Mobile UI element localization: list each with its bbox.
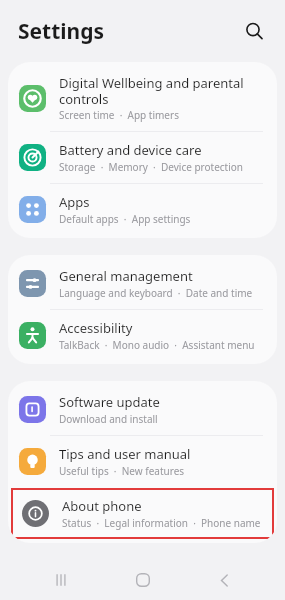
staticText: Status · Legal information · Phone name (62, 516, 261, 530)
staticText: Default apps · App settings (59, 212, 191, 226)
button[interactable]: Apps (8, 184, 277, 235)
staticText: Useful tips · New features (59, 464, 185, 478)
staticText: About phone (62, 497, 142, 515)
staticText: General management (59, 267, 193, 285)
staticText: Digital Wellbeing and parental controls (59, 74, 244, 107)
button[interactable]: Back (203, 560, 245, 600)
staticText: TalkBack · Mono audio · Assistant menu (59, 338, 255, 352)
staticText: Battery and device care (59, 141, 202, 159)
staticText: Accessibility (59, 319, 133, 337)
button[interactable]: Battery and device care (8, 132, 277, 183)
button[interactable]: Search settings (235, 12, 273, 50)
staticText: Tips and user manual (59, 445, 191, 463)
staticText: Software update (59, 393, 160, 411)
staticText: Download and install (59, 412, 158, 426)
button[interactable]: General management (8, 258, 277, 309)
staticText: Storage · Memory · Device protection (59, 160, 244, 174)
button[interactable]: About phone (11, 488, 274, 539)
button[interactable]: Home (122, 560, 164, 600)
staticText: Screen time · App timers (59, 108, 179, 122)
button[interactable]: Accessibility (8, 310, 277, 361)
button[interactable]: Software update (8, 384, 277, 435)
button[interactable]: Digital Wellbeing and parental controls (8, 65, 277, 131)
staticText: Settings (18, 17, 105, 46)
button[interactable]: Tips and user manual (8, 436, 277, 487)
staticText: Language and keyboard · Date and time (59, 286, 253, 300)
staticText: Apps (59, 193, 90, 211)
button[interactable]: Recent apps (40, 560, 82, 600)
